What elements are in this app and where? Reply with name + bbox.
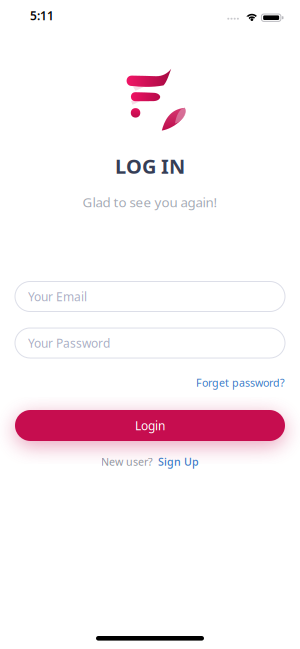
staticText: Glad to see you again! [82, 193, 217, 211]
button[interactable]: Your Email [15, 281, 285, 311]
staticText: Your Password [28, 335, 110, 351]
staticText: New user? [101, 454, 153, 469]
button[interactable]: Forget password? [196, 375, 285, 390]
button[interactable]: Sign Up [158, 454, 199, 469]
button[interactable]: Login [15, 410, 285, 441]
staticText: LOG IN [115, 153, 185, 179]
staticText: Your Email [28, 288, 87, 304]
button[interactable]: Your Password [15, 328, 285, 358]
staticText: Login [135, 417, 165, 433]
staticText: 5:11 [30, 7, 54, 23]
staticText: Forget password? [196, 375, 285, 390]
staticText: Sign Up [158, 454, 199, 469]
